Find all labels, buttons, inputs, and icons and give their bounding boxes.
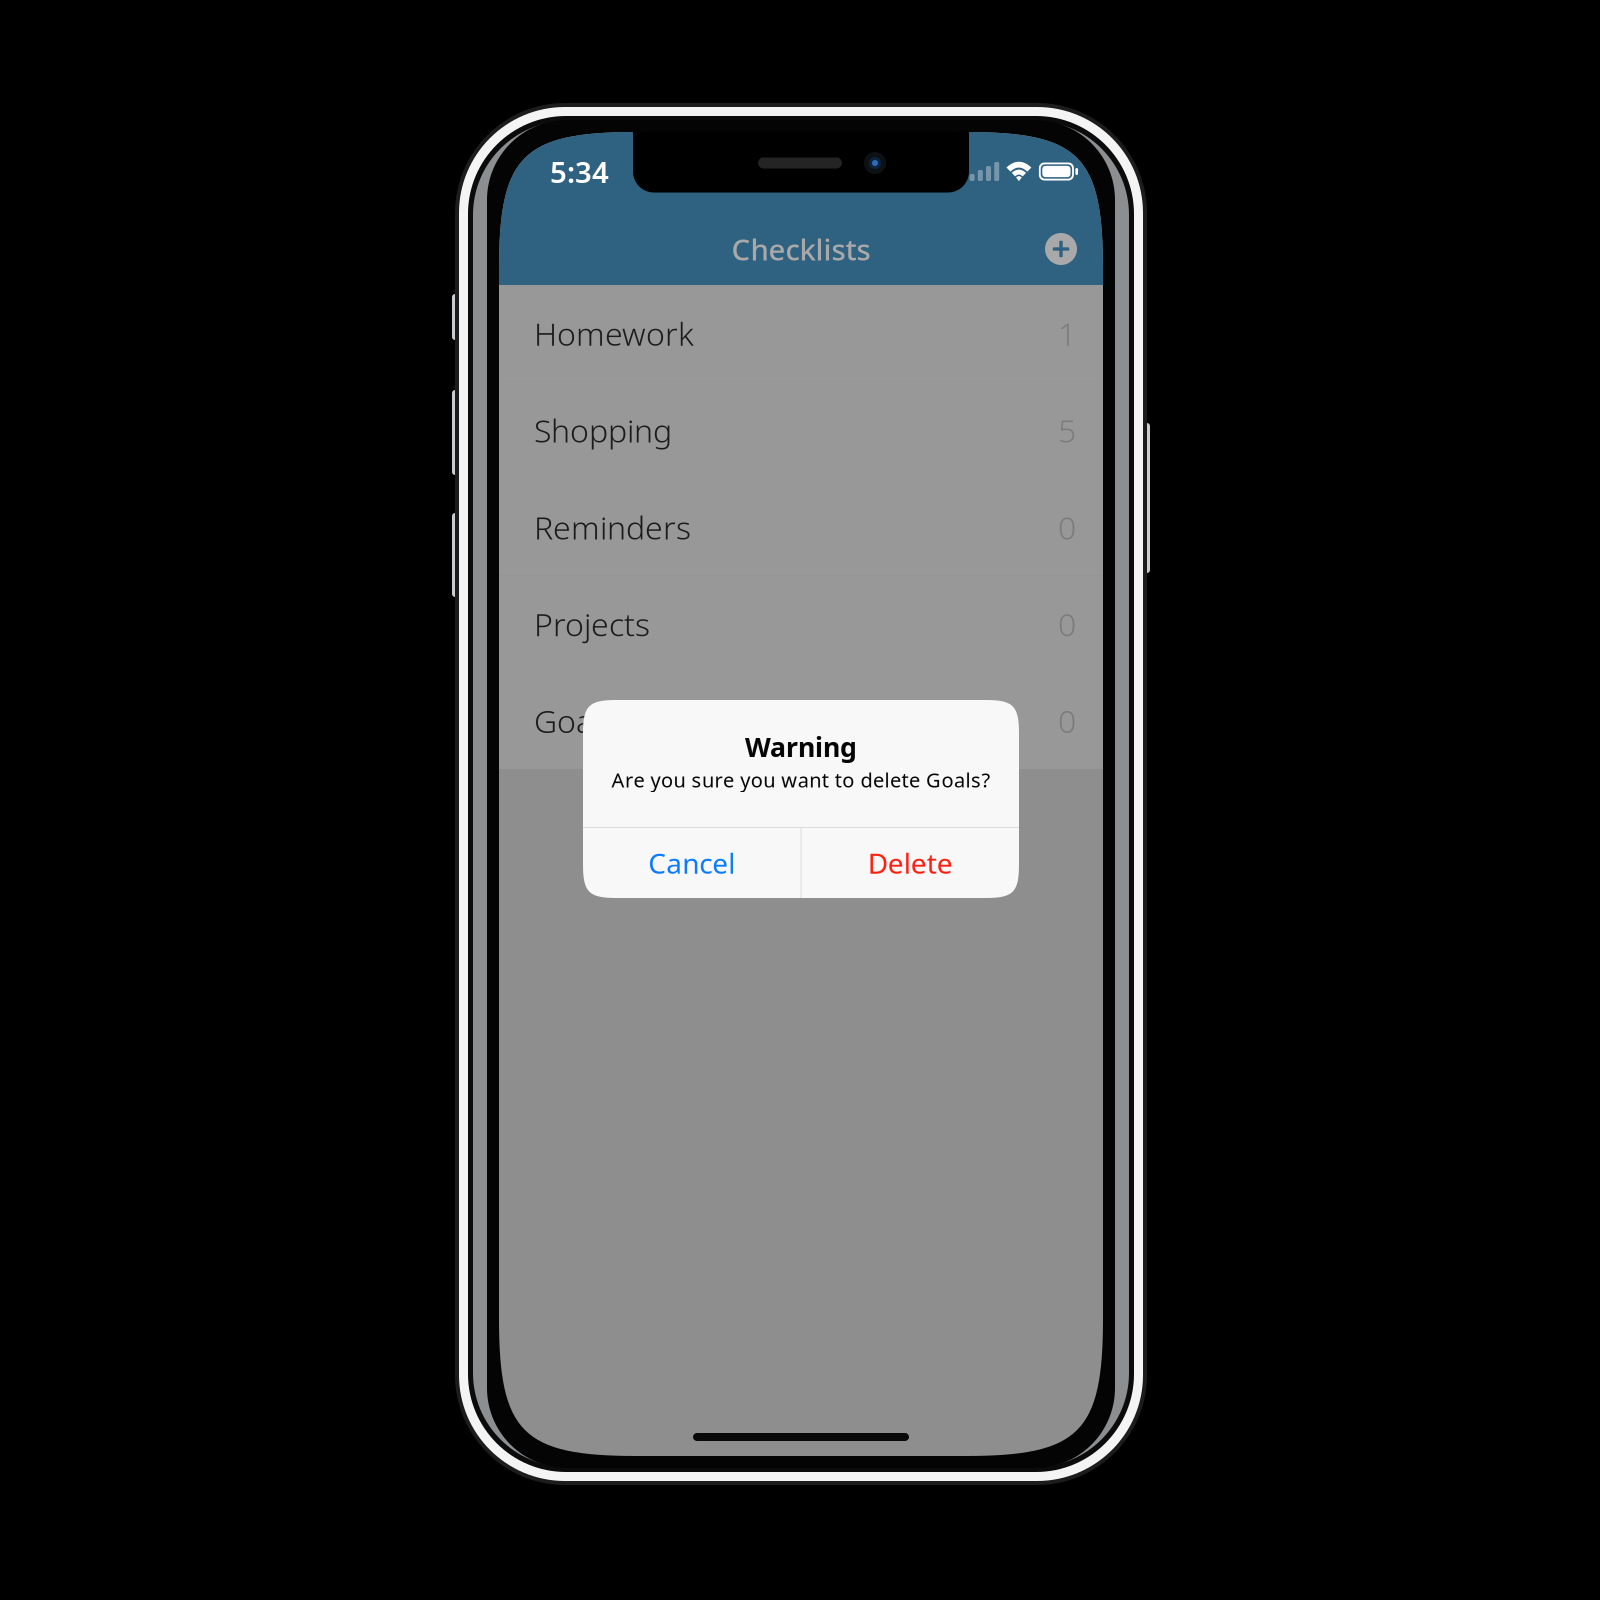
button[interactable]: Delete	[801, 828, 1019, 898]
staticText: Cancel	[648, 844, 735, 882]
staticText: 1	[1058, 312, 1076, 355]
button[interactable]: Projects	[499, 575, 1103, 672]
staticText: 0	[1058, 699, 1076, 742]
staticText: Goals	[534, 699, 615, 742]
staticText: Delete	[868, 844, 953, 882]
staticText: 5:34	[550, 152, 609, 191]
button[interactable]: Homework	[499, 285, 1103, 382]
staticText: Homework	[534, 312, 694, 355]
button[interactable]: Cancel	[583, 828, 800, 898]
staticText: Checklists	[731, 229, 870, 268]
staticText: 0	[1058, 506, 1076, 548]
staticText: Reminders	[534, 506, 691, 548]
staticText: 0	[1058, 603, 1076, 645]
staticText: 5	[1058, 409, 1076, 451]
button[interactable]: Add checklist	[1033, 218, 1089, 280]
staticText: Projects	[534, 603, 650, 645]
button[interactable]: Goals	[499, 672, 1103, 769]
staticText: Warning	[745, 729, 857, 764]
staticText: Shopping	[534, 409, 672, 451]
button[interactable]: Shopping	[499, 382, 1103, 479]
staticText: Are you sure you want to delete Goals?	[611, 766, 991, 793]
button[interactable]: Reminders	[499, 479, 1103, 575]
